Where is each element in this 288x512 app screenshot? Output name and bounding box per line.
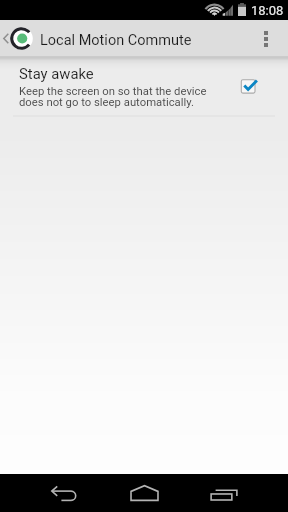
staticText: 18:08 <box>251 3 284 18</box>
button[interactable]: Home <box>116 474 172 512</box>
button[interactable]: Stay awake <box>0 61 288 116</box>
staticText: Stay awake <box>19 65 94 82</box>
staticText: Local Motion Commute <box>40 32 192 49</box>
button[interactable]: Navigate up <box>0 20 38 57</box>
button[interactable]: More options <box>252 20 281 57</box>
staticText: Keep the screen on so that the device <box>19 85 207 98</box>
button[interactable]: Back <box>36 474 92 512</box>
button[interactable]: Recent apps <box>196 474 252 512</box>
staticText: does not go to sleep automatically. <box>19 96 194 109</box>
